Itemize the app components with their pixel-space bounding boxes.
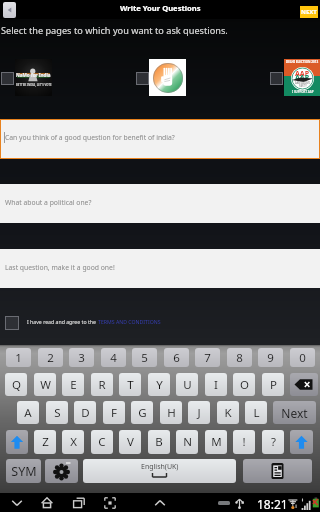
button[interactable]: ?: [262, 430, 284, 454]
staticText: P: [270, 377, 277, 393]
button[interactable]: Z: [34, 430, 56, 454]
staticText: Select the pages to which you want to as…: [1, 24, 228, 37]
staticText: 7: [204, 350, 211, 366]
button[interactable]: Select page: [136, 59, 187, 96]
staticText: 5: [141, 350, 148, 366]
button[interactable]: C: [91, 430, 113, 454]
button[interactable]: Select page: [270, 59, 320, 96]
staticText: 8: [236, 350, 243, 366]
button[interactable]: M: [205, 430, 227, 454]
button[interactable]: O: [233, 373, 255, 396]
staticText: 2: [47, 350, 54, 366]
staticText: S: [54, 405, 61, 421]
button[interactable]: Backspace: [290, 373, 318, 396]
button[interactable]: 6: [164, 348, 189, 367]
button[interactable]: E: [62, 373, 84, 396]
staticText: 4: [110, 350, 117, 366]
button[interactable]: G: [131, 401, 153, 424]
staticText: U: [183, 377, 192, 393]
staticText: BETTER INDIA, LET'S VOTE: [16, 83, 52, 87]
button[interactable]: Home: [36, 493, 58, 512]
staticText: 9: [267, 350, 274, 366]
button[interactable]: N: [176, 430, 198, 454]
button[interactable]: English(UK): [83, 459, 236, 483]
button[interactable]: 5: [132, 348, 157, 367]
staticText: 18:21: [257, 496, 288, 512]
staticText: Y: [156, 377, 163, 393]
button[interactable]: T: [119, 373, 141, 396]
staticText: AAM AADMI: [295, 81, 310, 85]
button[interactable]: Hide keyboard: [6, 493, 28, 512]
staticText: B: [155, 434, 163, 450]
button[interactable]: Clipboard: [243, 459, 312, 483]
button[interactable]: Q: [5, 373, 27, 396]
staticText: R: [98, 377, 106, 393]
button[interactable]: Back: [3, 2, 16, 18]
staticText: G: [138, 405, 147, 421]
staticText: What about a political one?: [5, 198, 92, 207]
staticText: English(UK): [141, 462, 179, 472]
button[interactable]: SYM: [6, 459, 41, 483]
staticText: D: [81, 405, 90, 421]
button[interactable]: 0: [290, 348, 315, 367]
button[interactable]: P: [262, 373, 284, 396]
staticText: 3: [78, 350, 85, 366]
button[interactable]: 9: [258, 348, 283, 367]
staticText: M: [211, 434, 222, 450]
staticText: 6: [173, 350, 180, 366]
button[interactable]: 8: [227, 348, 252, 367]
button[interactable]: 2: [38, 348, 63, 367]
button[interactable]: What about a political one?: [0, 184, 320, 223]
button[interactable]: A: [17, 401, 39, 424]
button[interactable]: Last question, make it a good one!: [0, 249, 320, 288]
button[interactable]: Recents: [68, 493, 90, 512]
button[interactable]: D: [74, 401, 96, 424]
staticText: L: [253, 405, 260, 421]
staticText: N: [183, 434, 192, 450]
button[interactable]: Select page: [1, 59, 52, 96]
staticText: C: [98, 434, 106, 450]
button[interactable]: F: [103, 401, 125, 424]
button[interactable]: I: [205, 373, 227, 396]
staticText: O: [240, 377, 249, 393]
button[interactable]: R: [91, 373, 113, 396]
button[interactable]: K: [217, 401, 239, 424]
button[interactable]: 4: [101, 348, 126, 367]
button[interactable]: 7: [195, 348, 220, 367]
button[interactable]: V: [119, 430, 141, 454]
button[interactable]: 1: [6, 348, 31, 367]
button[interactable]: B: [148, 430, 170, 454]
staticText: 1: [15, 350, 22, 366]
staticText: I SUPPORT AAP: [292, 90, 314, 94]
staticText: I have read and agree to the: [27, 318, 98, 325]
staticText: ?: [271, 434, 276, 450]
button[interactable]: J: [188, 401, 210, 424]
button[interactable]: TERMS AND CONDITIONS: [98, 318, 161, 325]
button[interactable]: 3: [69, 348, 94, 367]
staticText: J: [197, 405, 201, 421]
button[interactable]: W: [34, 373, 56, 396]
button[interactable]: Next: [273, 401, 316, 424]
button[interactable]: Expand: [149, 493, 171, 512]
button[interactable]: Shift: [290, 430, 313, 454]
staticText: NEXT: [301, 8, 317, 16]
button[interactable]: Can you think of a good question for ben…: [0, 119, 320, 159]
button[interactable]: X: [62, 430, 84, 454]
staticText: V: [127, 434, 134, 450]
button[interactable]: Y: [148, 373, 170, 396]
staticText: Last question, make it a good one!: [5, 263, 115, 272]
button[interactable]: !: [233, 430, 255, 454]
button[interactable]: U: [176, 373, 198, 396]
button[interactable]: NEXT: [300, 6, 318, 18]
button[interactable]: H: [160, 401, 182, 424]
button[interactable]: Settings: [45, 459, 78, 483]
staticText: W: [40, 377, 51, 393]
staticText: T: [127, 377, 134, 393]
button[interactable]: Shift: [6, 430, 28, 454]
staticText: K: [224, 405, 232, 421]
button[interactable]: S: [46, 401, 68, 424]
button[interactable]: Screenshot: [99, 493, 121, 512]
button[interactable]: Accept terms and conditions: [5, 316, 19, 330]
button[interactable]: L: [245, 401, 267, 424]
staticText: NaMo for India: [16, 72, 51, 78]
